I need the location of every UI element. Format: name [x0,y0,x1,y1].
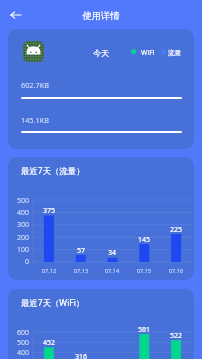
staticText: 07.16 [164,267,188,275]
staticText: 400 [8,208,29,218]
staticText: 34 [100,248,124,258]
staticText: 452 [37,338,61,348]
staticText: 0 [8,257,29,267]
staticText: 581 [132,325,156,335]
staticText: 225 [164,225,188,235]
staticText: 522 [164,331,188,341]
staticText: 602.7KB [21,80,49,90]
staticText: 300 [8,220,29,230]
staticText: 最近7天（流量） [21,165,85,176]
staticText: 375 [37,206,61,216]
staticText: 100 [8,245,29,255]
staticText: 07.14 [100,267,124,275]
staticText: 400 [8,348,29,358]
staticText: 500 [8,338,29,348]
staticText: 07.12 [37,267,61,275]
staticText: 200 [8,233,29,243]
staticText: 57 [69,246,93,256]
staticText: 500 [8,196,29,206]
staticText: 316 [69,352,93,359]
staticText: 使用详情 [0,10,202,22]
staticText: 最近7天（WiFi） [21,297,85,308]
button[interactable]: Back [5,4,26,25]
staticText: 145 [132,235,156,245]
staticText: 600 [8,328,29,338]
staticText: 145.1KB [21,115,49,125]
staticText: 今天 [93,48,110,58]
staticText: 07.13 [69,267,93,275]
staticText: 07.15 [132,267,156,275]
staticText: 流量 [168,49,182,57]
staticText: WiFi [141,48,155,57]
